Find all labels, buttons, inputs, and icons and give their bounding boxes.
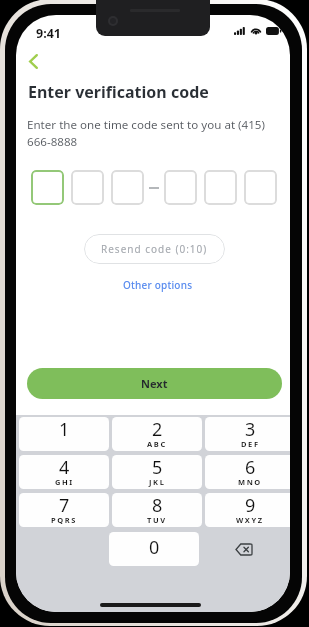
button[interactable]: 6 xyxy=(205,455,290,489)
staticText: TUV xyxy=(147,515,167,525)
button[interactable]: Next xyxy=(27,368,282,399)
button[interactable]: Code digit xyxy=(204,170,237,205)
staticText: 2 xyxy=(152,417,163,442)
staticText: 1 xyxy=(59,417,70,442)
button[interactable]: 3 xyxy=(205,417,290,451)
button[interactable]: Code digit xyxy=(111,170,144,205)
button[interactable]: Delete xyxy=(199,532,289,566)
staticText: GHI xyxy=(55,477,74,487)
button[interactable]: 7 xyxy=(19,493,109,527)
button[interactable]: Code digit xyxy=(244,170,277,205)
staticText: ABC xyxy=(147,439,167,449)
button[interactable]: 2 xyxy=(112,417,202,451)
staticText: MNO xyxy=(238,477,262,487)
staticText: 4 xyxy=(59,455,70,480)
staticText: WXYZ xyxy=(236,515,264,525)
staticText: DEF xyxy=(241,439,260,449)
button[interactable]: Code digit xyxy=(164,170,197,205)
staticText: Enter verification code xyxy=(28,81,209,103)
staticText: Enter the one time code sent to you at (… xyxy=(27,117,279,149)
staticText: 9:41 xyxy=(36,25,61,42)
button[interactable]: 4 xyxy=(19,455,109,489)
staticText: 5 xyxy=(152,455,163,480)
button[interactable]: Back xyxy=(17,47,49,75)
staticText: 8 xyxy=(152,493,163,518)
button[interactable]: 8 xyxy=(112,493,202,527)
button[interactable]: Code digit xyxy=(31,170,64,205)
button[interactable]: 5 xyxy=(112,455,202,489)
button[interactable]: Other options xyxy=(117,275,199,295)
staticText: 0 xyxy=(149,535,160,560)
staticText: 3 xyxy=(245,417,256,442)
staticText: 9 xyxy=(245,493,256,518)
button[interactable]: Code digit xyxy=(71,170,104,205)
staticText: Other options xyxy=(123,278,193,292)
button[interactable]: 9 xyxy=(205,493,290,527)
staticText: Resend code (0:10) xyxy=(101,242,208,256)
staticText: Next xyxy=(141,376,168,391)
button[interactable]: 0 xyxy=(109,532,199,566)
staticText: PQRS xyxy=(51,515,78,525)
button[interactable]: 1 xyxy=(19,417,109,451)
staticText: 6 xyxy=(245,455,256,480)
button[interactable]: Resend code (0:10) xyxy=(84,234,225,264)
staticText: 7 xyxy=(59,493,70,518)
staticText: JKL xyxy=(149,477,166,487)
